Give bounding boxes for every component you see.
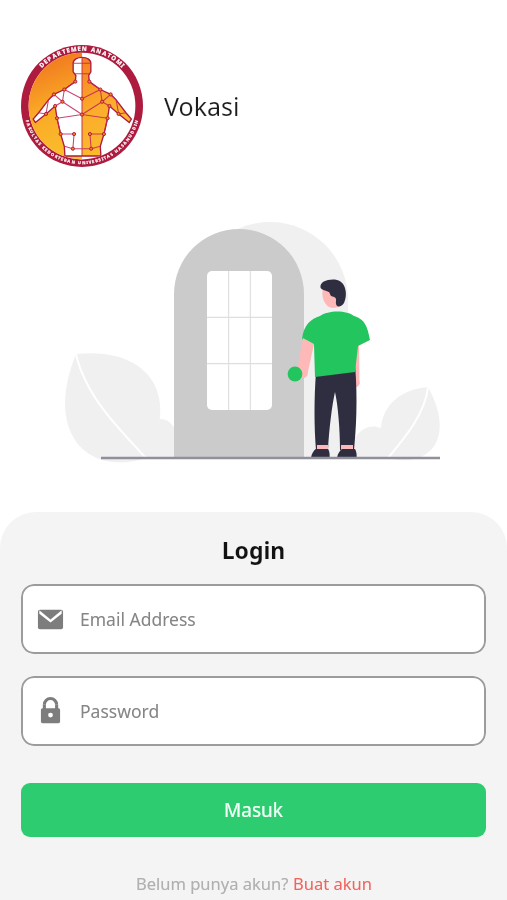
staticText: Email Address (80, 607, 196, 631)
staticText: Password (80, 699, 160, 723)
staticText: Masuk (224, 797, 283, 823)
staticText: Belum punya akun? (136, 872, 293, 894)
button[interactable]: Password (21, 676, 486, 746)
staticText: Login (0, 534, 507, 565)
button[interactable]: Email Address (21, 584, 486, 654)
button[interactable]: Buat akun (293, 872, 372, 894)
button[interactable]: Masuk (21, 783, 486, 837)
staticText: Vokasi (164, 89, 240, 123)
